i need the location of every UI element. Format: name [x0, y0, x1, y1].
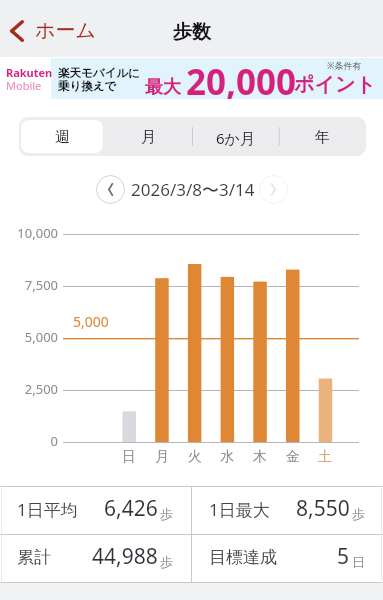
staticText: 目標達成 [209, 547, 277, 568]
staticText: 5 [337, 542, 350, 571]
staticText: 歩数 [173, 20, 211, 44]
staticText: 火 [183, 448, 207, 466]
staticText: 年 [315, 128, 330, 147]
staticText: 月 [141, 128, 156, 147]
staticText: 6,426 [104, 494, 158, 523]
staticText: 土 [313, 448, 337, 466]
staticText: 乗り換えで [58, 79, 117, 93]
staticText: 歩 [160, 554, 173, 570]
staticText: 累計 [17, 547, 51, 568]
staticText: 20,000 [186, 58, 297, 99]
staticText: 0 [0, 432, 58, 450]
staticText: 5,000 [73, 312, 109, 331]
staticText: ホーム [35, 18, 96, 43]
staticText: 木 [248, 448, 272, 466]
button[interactable]: 6か月 [192, 117, 279, 156]
staticText: 5,000 [0, 328, 58, 346]
staticText: 金 [281, 448, 305, 466]
staticText: 6か月 [216, 128, 255, 148]
staticText: ※条件有 [327, 59, 362, 71]
button[interactable]: Rakuten [0, 58, 383, 99]
staticText: Rakuten [6, 65, 53, 80]
staticText: 7,500 [0, 276, 58, 294]
button[interactable]: 年 [279, 117, 366, 156]
staticText: Mobile [6, 78, 42, 93]
button[interactable]: ホーム [0, 14, 104, 47]
staticText: 1日平均 [17, 498, 78, 521]
button[interactable]: 1日最大 [192, 487, 383, 534]
staticText: 歩 [352, 506, 365, 522]
staticText: 週 [55, 128, 70, 147]
button[interactable]: 1日平均 [0, 487, 191, 534]
button[interactable]: Previous week [96, 175, 125, 204]
staticText: 2026/3/8〜3/14 [131, 178, 255, 201]
staticText: 最大 [145, 76, 181, 99]
staticText: 月 [150, 448, 174, 466]
staticText: 8,550 [296, 494, 350, 523]
button[interactable]: Next week [259, 175, 288, 204]
staticText: 10,000 [0, 224, 58, 242]
button[interactable]: 週 [19, 117, 105, 156]
staticText: 1日最大 [209, 498, 270, 521]
button[interactable]: 月 [105, 117, 192, 156]
button[interactable]: 目標達成 [192, 535, 383, 582]
staticText: 水 [215, 448, 239, 466]
staticText: 2,500 [0, 380, 58, 398]
staticText: 日 [117, 448, 141, 466]
staticText: 44,988 [92, 542, 158, 571]
staticText: 日 [352, 554, 365, 570]
staticText: ポイント [294, 72, 376, 97]
staticText: 楽天モバイルに [58, 66, 140, 80]
button[interactable]: 累計 [0, 535, 191, 582]
staticText: 歩 [160, 506, 173, 522]
